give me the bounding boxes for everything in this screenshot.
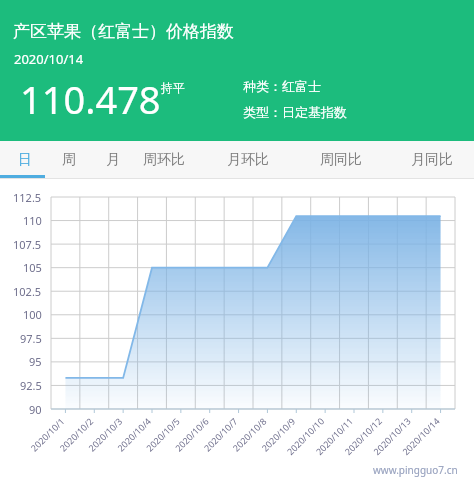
staticText: 月同比 [411,151,453,169]
staticText: 周环比 [143,151,185,169]
button[interactable]: 周环比 [132,141,196,179]
button[interactable]: 月环比 [216,141,280,179]
button[interactable]: 月 [92,141,134,179]
staticText: 日 [18,151,32,169]
staticText: 持平 [161,80,185,95]
staticText: 产区苹果（红富士）价格指数 [13,21,234,42]
staticText: 类型：日定基指数 [243,104,347,120]
staticText: 110.478 [20,73,161,125]
button[interactable]: 周 [48,141,90,179]
staticText: 周 [62,151,76,169]
staticText: 月 [106,151,120,169]
staticText: 2020/10/14 [14,50,84,68]
button[interactable]: 日 [4,141,46,179]
button[interactable]: 月同比 [400,141,464,179]
button[interactable]: 周同比 [309,141,373,179]
staticText: 月环比 [227,151,269,169]
staticText: 周同比 [320,151,362,169]
staticText: 种类：红富士 [243,78,321,94]
